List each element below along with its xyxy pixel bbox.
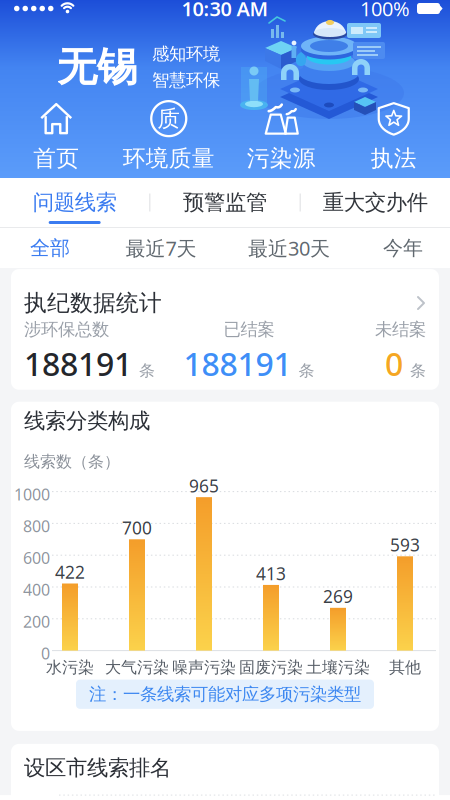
button[interactable]: 最近30天 [222,228,356,268]
staticText: 今年 [383,236,423,260]
staticText: 965 [189,474,219,497]
button[interactable]: 最近7天 [100,228,222,268]
staticText: 188191 [183,342,291,385]
staticText: 固废污染 [239,658,303,677]
button[interactable]: 全部 [0,228,100,268]
staticText: 质 [157,105,180,132]
staticText: 大气污染 [105,658,169,677]
staticText: 水污染 [46,658,94,677]
staticText: 0 [385,342,403,385]
staticText: 条 [410,361,426,380]
staticText: 800 [23,515,50,537]
staticText: 设区市线索排名 [24,755,171,781]
staticText: 感知环境 [152,43,220,65]
staticText: 执纪数据统计 [24,289,162,317]
staticText: 执法 [371,145,417,172]
staticText: 线索数（条） [24,452,120,472]
staticText: 600 [23,547,50,568]
button[interactable]: 污染源 [225,100,337,172]
staticText: 未结案 [375,319,426,340]
staticText: 环境质量 [123,145,215,172]
staticText: 问题线索 [33,189,117,216]
staticText: 593 [390,533,420,556]
button[interactable]: 今年 [356,228,450,268]
staticText: 噪声污染 [172,658,236,677]
staticText: 1000 [14,484,50,505]
staticText: 污染源 [247,145,316,172]
staticText: 条 [298,361,314,380]
staticText: 条 [139,361,155,380]
staticText: 已结案 [223,319,274,340]
button[interactable]: 预警监管 [150,189,300,216]
staticText: 188191 [24,342,132,385]
staticText: 最近7天 [125,235,196,261]
button[interactable]: 执法 [337,100,450,172]
button[interactable]: 首页 [0,100,112,172]
staticText: 线索分类构成 [24,408,150,434]
button[interactable]: 问题线索 [0,178,149,227]
staticText: 预警监管 [183,189,267,216]
button[interactable]: 重大交办件 [301,189,450,216]
staticText: 700 [122,516,152,539]
staticText: 0 [41,643,50,664]
staticText: 注：一条线索可能对应多项污染类型 [89,684,361,705]
staticText: 重大交办件 [323,189,428,216]
staticText: 涉环保总数 [24,319,109,340]
staticText: 269 [323,585,353,608]
staticText: 10:30 AM [181,0,268,22]
staticText: 智慧环保 [152,70,220,91]
button[interactable]: 执纪数据统计 [11,269,439,390]
staticText: 200 [23,611,50,632]
staticText: 土壤污染 [306,658,370,677]
staticText: 400 [23,579,50,600]
staticText: 422 [55,560,85,583]
staticText: 其他 [389,658,421,677]
staticText: 100% [360,0,410,22]
staticText: 无锡 [57,42,137,92]
staticText: 413 [256,562,286,585]
staticText: 首页 [33,145,79,172]
button[interactable]: 质 [112,100,225,172]
staticText: 全部 [30,236,70,260]
staticText: 最近30天 [248,235,330,261]
